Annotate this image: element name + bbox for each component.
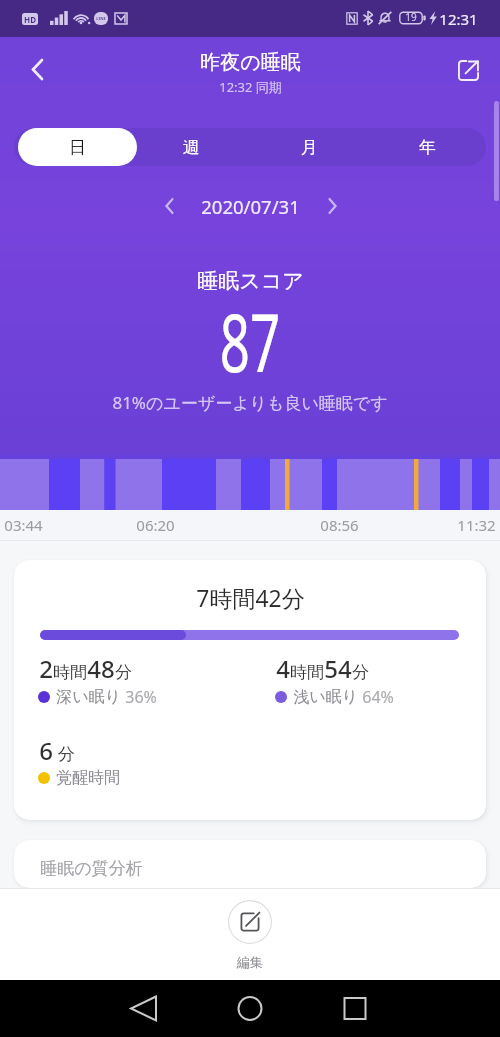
button[interactable]: Previous day xyxy=(151,188,187,224)
staticText: 81%のユーザーよりも良い睡眠です xyxy=(112,391,388,414)
staticText: 分 xyxy=(352,662,369,683)
staticText: 54 xyxy=(324,652,352,685)
staticText: 年 xyxy=(419,137,436,158)
staticText: HD xyxy=(24,14,36,25)
button[interactable]: 週 xyxy=(132,128,250,166)
button[interactable]: Share xyxy=(444,46,492,94)
staticText: 編集 xyxy=(237,954,263,970)
staticText: 分 xyxy=(115,662,132,683)
staticText: 2020/07/31 xyxy=(201,194,300,219)
staticText: 19 xyxy=(405,10,417,24)
staticText: 週 xyxy=(183,137,200,158)
button[interactable]: 編集 xyxy=(228,900,272,970)
staticText: 睡眠の質分析 xyxy=(40,858,143,879)
staticText: 2 xyxy=(39,652,53,685)
button[interactable]: 日 xyxy=(18,128,137,166)
staticText: 深い眠り xyxy=(56,687,121,707)
button[interactable]: 睡眠の質分析 xyxy=(14,840,486,888)
staticText: 時間 xyxy=(290,662,324,683)
staticText: 7時間42分 xyxy=(196,582,305,613)
button[interactable]: Back xyxy=(13,45,61,93)
staticText: 06:20 xyxy=(136,515,175,535)
staticText: 時間 xyxy=(53,662,87,683)
staticText: 08:56 xyxy=(320,515,359,535)
staticText: 36% xyxy=(121,686,157,708)
staticText: 64% xyxy=(358,686,394,708)
button[interactable]: 年 xyxy=(368,128,486,166)
button[interactable]: Next day xyxy=(314,188,350,224)
staticText: 03:44 xyxy=(4,515,43,535)
staticText: 48 xyxy=(87,652,115,685)
staticText: 87 xyxy=(220,286,280,395)
staticText: 月 xyxy=(301,137,318,158)
staticText: 昨夜の睡眠 xyxy=(200,50,301,75)
staticText: 11:32 xyxy=(457,515,496,535)
staticText: LINE xyxy=(96,16,106,21)
staticText: 分 xyxy=(53,742,75,765)
button[interactable]: 月 xyxy=(250,128,368,166)
staticText: 浅い眠り xyxy=(293,687,358,707)
staticText: 日 xyxy=(69,137,86,158)
staticText: 4 xyxy=(276,652,290,685)
staticText: 覚醒時間 xyxy=(56,768,120,788)
staticText: 睡眠スコア xyxy=(197,268,304,294)
staticText: 12:31 xyxy=(439,9,478,29)
staticText: 12:32 同期 xyxy=(219,78,282,96)
staticText: 6 xyxy=(39,734,53,767)
